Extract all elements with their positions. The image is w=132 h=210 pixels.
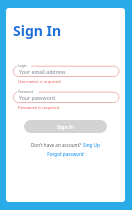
button[interactable]: Sign In	[24, 120, 107, 133]
button[interactable]: Login	[11, 64, 120, 77]
staticText: Login	[18, 63, 27, 67]
staticText: Username is required	[18, 79, 61, 85]
staticText: Forgot password	[47, 151, 84, 157]
staticText: Password	[18, 89, 33, 93]
staticText: Sign In	[57, 123, 74, 130]
button[interactable]: Password	[11, 90, 120, 103]
staticText: Your password	[19, 94, 56, 101]
staticText: Password is required	[18, 105, 60, 111]
staticText: Sign In	[13, 21, 62, 40]
button[interactable]: Sing Up	[83, 142, 100, 148]
staticText: Sing Up	[83, 142, 100, 148]
staticText: Your email address	[19, 68, 66, 75]
staticText: Don't have an account?	[31, 142, 83, 148]
button[interactable]: Forgot password	[47, 151, 84, 157]
